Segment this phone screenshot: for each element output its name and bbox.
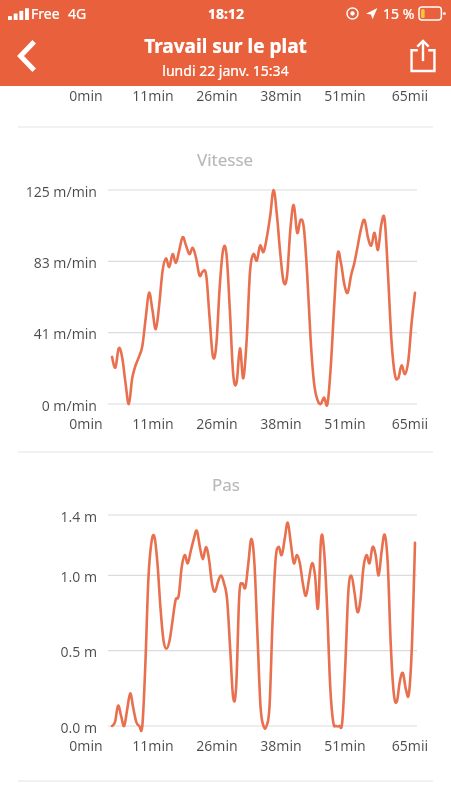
staticText: 4G — [68, 4, 87, 23]
staticText: 125 m/min — [25, 182, 97, 201]
staticText: 65mii — [381, 736, 439, 755]
staticText: Free — [31, 4, 60, 23]
staticText: 38min — [252, 736, 310, 755]
button[interactable]: Back — [0, 26, 56, 86]
staticText: 51min — [316, 86, 374, 105]
staticText: 11min — [124, 414, 182, 433]
staticText: 18:12 — [208, 4, 244, 23]
staticText: 51min — [316, 736, 374, 755]
staticText: 0 m/min — [41, 396, 97, 415]
staticText: 0.0 m — [60, 718, 97, 737]
staticText: 11min — [124, 736, 182, 755]
staticText: lundi 22 janv. 15:34 — [162, 61, 289, 80]
staticText: 65mii — [381, 414, 439, 433]
staticText: Vitesse — [197, 148, 254, 171]
staticText: 0min — [57, 736, 115, 755]
staticText: 0min — [57, 86, 115, 105]
staticText: 65mii — [381, 86, 439, 105]
staticText: 1.4 m — [60, 507, 97, 526]
staticText: 0.5 m — [60, 642, 97, 661]
staticText: Pas — [212, 473, 240, 496]
staticText: 0min — [57, 414, 115, 433]
staticText: 11min — [124, 86, 182, 105]
staticText: 26min — [188, 736, 246, 755]
staticText: 38min — [252, 86, 310, 105]
staticText: 26min — [188, 414, 246, 433]
staticText: 15 % — [383, 4, 415, 23]
staticText: 1.0 m — [60, 567, 97, 586]
staticText: 38min — [252, 414, 310, 433]
staticText: 83 m/min — [33, 253, 97, 272]
staticText: 26min — [188, 86, 246, 105]
button[interactable]: Share — [395, 26, 451, 86]
staticText: 51min — [316, 414, 374, 433]
staticText: 41 m/min — [33, 324, 97, 343]
staticText: Travail sur le plat — [144, 33, 307, 59]
